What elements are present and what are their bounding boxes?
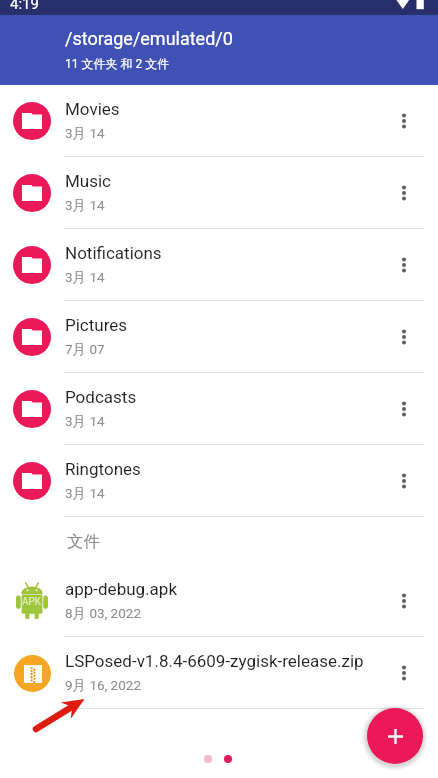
staticText: 9月 16, 2022	[65, 677, 141, 694]
staticText: 3月 14	[65, 197, 105, 214]
staticText: 3月 14	[65, 485, 105, 502]
staticText: 8月 03, 2022	[65, 605, 141, 622]
button[interactable]: More options	[384, 173, 424, 213]
button[interactable]: Movies	[0, 85, 438, 157]
button[interactable]: More options	[384, 581, 424, 621]
staticText: Movies	[65, 99, 120, 119]
staticText: LSPosed-v1.8.4-6609-zygisk-release.zip	[65, 651, 364, 671]
staticText: 3月 14	[65, 269, 105, 286]
staticText: Pictures	[65, 315, 128, 335]
staticText: 7月 07	[65, 341, 105, 358]
button[interactable]: More options	[384, 653, 424, 693]
staticText: Notifications	[65, 243, 162, 263]
staticText: 3月 14	[65, 125, 105, 142]
button[interactable]: Notifications	[0, 229, 438, 301]
staticText: 3月 14	[65, 413, 105, 430]
button[interactable]: More options	[384, 461, 424, 501]
button[interactable]: Music	[0, 157, 438, 229]
button[interactable]: LSPosed-v1.8.4-6609-zygisk-release.zip	[0, 637, 438, 709]
button[interactable]: More options	[384, 245, 424, 285]
staticText: /storage/emulated/0	[65, 28, 233, 49]
button[interactable]: More options	[384, 101, 424, 141]
button[interactable]: Ringtones	[0, 445, 438, 517]
staticText: APK	[22, 596, 42, 608]
button[interactable]: More options	[384, 389, 424, 429]
staticText: app-debug.apk	[65, 579, 177, 599]
staticText: Ringtones	[65, 459, 141, 479]
button[interactable]: More options	[384, 317, 424, 357]
button[interactable]: Add	[367, 708, 423, 764]
staticText: 4:19	[10, 0, 39, 10]
staticText: 11 文件夹 和 2 文件	[65, 56, 170, 71]
button[interactable]: Pictures	[0, 301, 438, 373]
staticText: 文件	[67, 531, 100, 552]
button[interactable]: Podcasts	[0, 373, 438, 445]
button[interactable]: APK	[0, 565, 438, 637]
staticText: Music	[65, 171, 112, 191]
staticText: Podcasts	[65, 387, 137, 407]
